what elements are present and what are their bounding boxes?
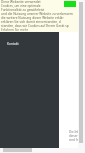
- staticText: dieser Seite: [69, 134, 85, 138]
- staticText: Die Inhalte: [69, 130, 85, 134]
- button[interactable]: Kontakt: [7, 42, 19, 46]
- staticText: Funktionalität zu gewährleist: [1, 8, 45, 12]
- staticText: Erfahren Sie mehr: [1, 28, 29, 32]
- staticText: standen, dass wir Cookies auf Ihrem Gerä…: [1, 24, 69, 28]
- staticText: und die Nutzung unserer Website zu verbe…: [1, 12, 74, 16]
- staticText: Cookies, um eine optimale: [1, 4, 41, 8]
- staticText: sind frei: [69, 138, 81, 142]
- staticText: Kontakt: [7, 42, 19, 46]
- staticText: Diese Webseite verwendet: [1, 0, 41, 4]
- button[interactable]: Erfahren Sie mehr: [0, 28, 28, 32]
- staticText: die weitere Nutzung dieser Website erklä…: [1, 16, 64, 20]
- staticText: erklären Sie sich damit einverstanden, d: [1, 20, 61, 24]
